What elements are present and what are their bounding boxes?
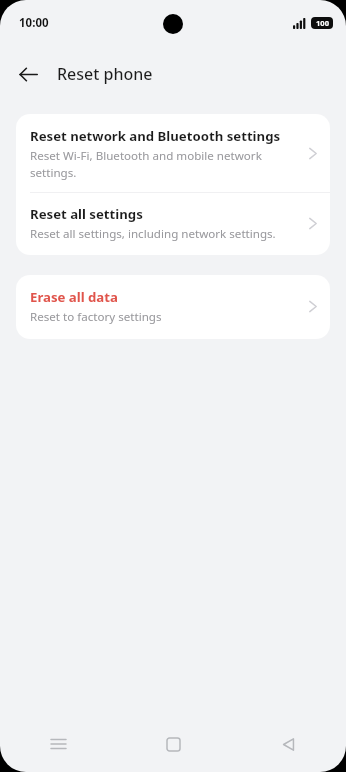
staticText: Reset all settings <box>30 205 143 223</box>
staticText: Reset network and Bluetooth settings <box>30 127 281 145</box>
button[interactable]: Home <box>116 716 231 772</box>
button[interactable]: Recent apps <box>0 716 116 772</box>
button[interactable]: Back <box>8 54 48 94</box>
button[interactable]: Back <box>231 716 346 772</box>
staticText: Erase all data <box>30 288 118 306</box>
staticText: Reset Wi-Fi, Bluetooth and mobile networ… <box>30 148 292 180</box>
button[interactable]: Reset all settings <box>16 193 330 255</box>
staticText: Reset all settings, including network se… <box>30 226 276 242</box>
staticText: Reset phone <box>57 63 153 85</box>
button[interactable]: Reset network and Bluetooth settings <box>16 114 330 192</box>
staticText: 10:00 <box>19 15 49 31</box>
staticText: Reset to factory settings <box>30 309 162 325</box>
button[interactable]: Erase all data <box>16 275 330 339</box>
staticText: 100 <box>316 18 329 28</box>
